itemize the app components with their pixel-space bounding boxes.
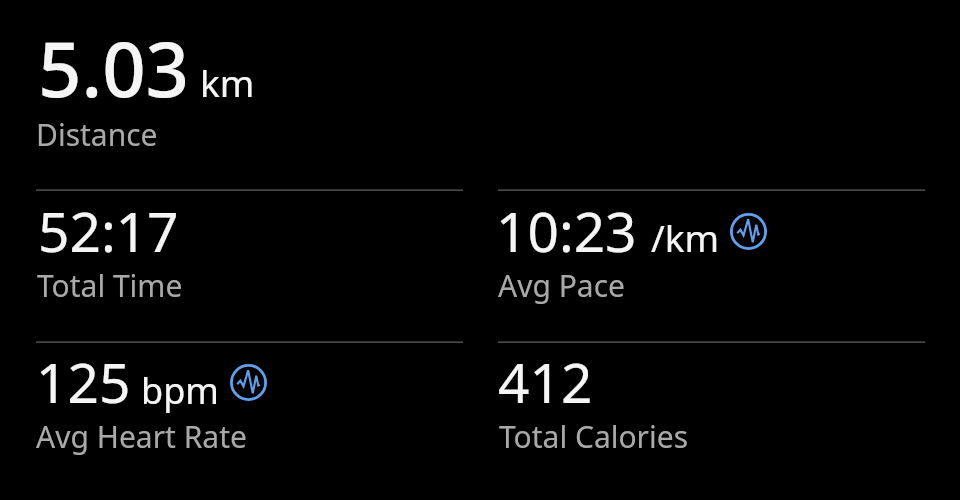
staticText: Total Calories [499,416,689,457]
staticText: 125 [36,344,131,419]
other: Heart rate sensor [730,213,767,250]
staticText: 52:17 [38,193,179,268]
button[interactable]: Average Heart Rate 125 bpm [30,350,462,468]
button[interactable]: Total Calories 412 [492,350,924,468]
staticText: bpm [141,366,219,415]
staticText: Total Time [37,265,183,306]
staticText: 412 [498,344,593,419]
staticText: Avg Heart Rate [36,416,247,457]
staticText: 10:23 [496,193,637,268]
staticText: 5.03 [38,16,190,120]
button[interactable]: Distance 5.03 kilometres [30,12,924,160]
staticText: /km [651,212,720,262]
button[interactable]: Total Time 52:17 [30,198,462,316]
button[interactable]: Average Pace 10:23 per kilometre [492,198,924,316]
staticText: km [200,57,255,107]
other: Heart rate sensor [230,364,267,401]
staticText: Distance [36,114,158,155]
staticText: Avg Pace [498,265,625,306]
